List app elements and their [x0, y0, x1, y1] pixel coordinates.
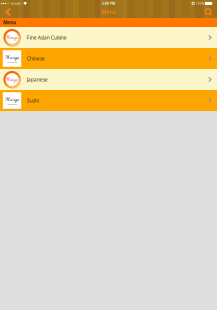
staticText: Menu [101, 9, 115, 15]
staticText: 100% [196, 1, 204, 5]
button[interactable]: Margo [0, 48, 217, 69]
staticText: Fine Asian Cuisine [27, 34, 67, 41]
staticText: Sushi [27, 97, 39, 104]
staticText: Japanese [27, 76, 48, 83]
staticText: Menu [3, 19, 16, 26]
staticText: Margo [5, 53, 19, 61]
staticText: 5:00 PM [102, 1, 115, 6]
staticText: Margo [6, 35, 18, 40]
staticText: Verizon [10, 1, 21, 5]
button[interactable]: Back [0, 6, 17, 17]
button[interactable]: Margo [0, 90, 217, 111]
button[interactable]: Margo [0, 69, 217, 90]
staticText: Margo [6, 77, 18, 82]
button[interactable]: Margo [0, 27, 217, 48]
staticText: restaurant [7, 103, 17, 106]
staticText: restaurant [7, 61, 17, 64]
button[interactable]: Search [200, 6, 217, 17]
staticText: Margo [5, 95, 19, 103]
staticText: Chinese [27, 55, 45, 62]
